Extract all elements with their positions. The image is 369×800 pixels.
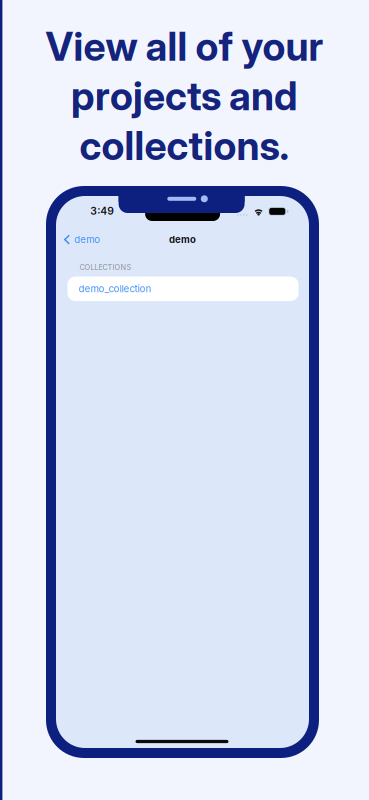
- button[interactable]: demo: [59, 229, 105, 250]
- staticText: COLLECTIONS: [79, 263, 131, 272]
- staticText: View all of your: [45, 23, 323, 70]
- staticText: projects and: [71, 72, 298, 120]
- staticText: 3:49: [90, 205, 114, 217]
- staticText: demo: [74, 234, 100, 245]
- button[interactable]: demo_collection: [67, 277, 298, 301]
- staticText: demo_collection: [78, 283, 151, 295]
- staticText: collections.: [79, 122, 289, 169]
- staticText: demo: [169, 234, 196, 245]
